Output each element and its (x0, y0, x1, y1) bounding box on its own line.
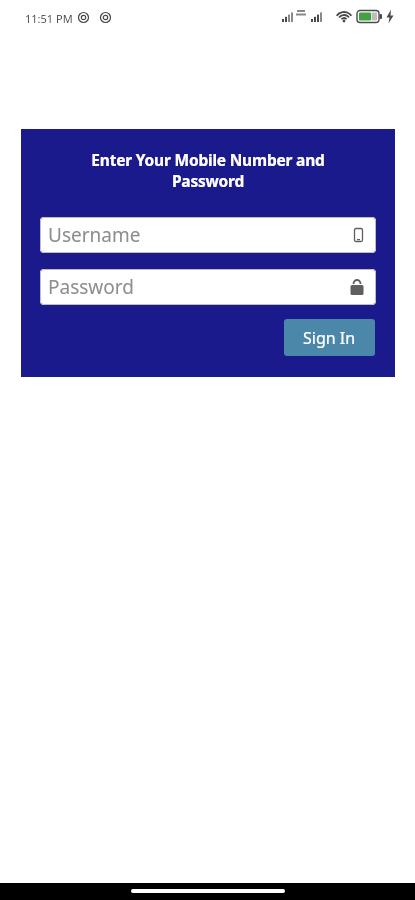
button[interactable]: Password (40, 269, 376, 305)
button[interactable]: Username (40, 217, 376, 253)
staticText: Username (48, 222, 141, 248)
button[interactable]: Sign In (284, 319, 375, 356)
staticText: Enter Your Mobile Number and Password (21, 149, 395, 192)
staticText: Sign In (303, 327, 356, 349)
staticText: Password (48, 274, 134, 300)
staticText: 11:51 PM (25, 11, 73, 26)
